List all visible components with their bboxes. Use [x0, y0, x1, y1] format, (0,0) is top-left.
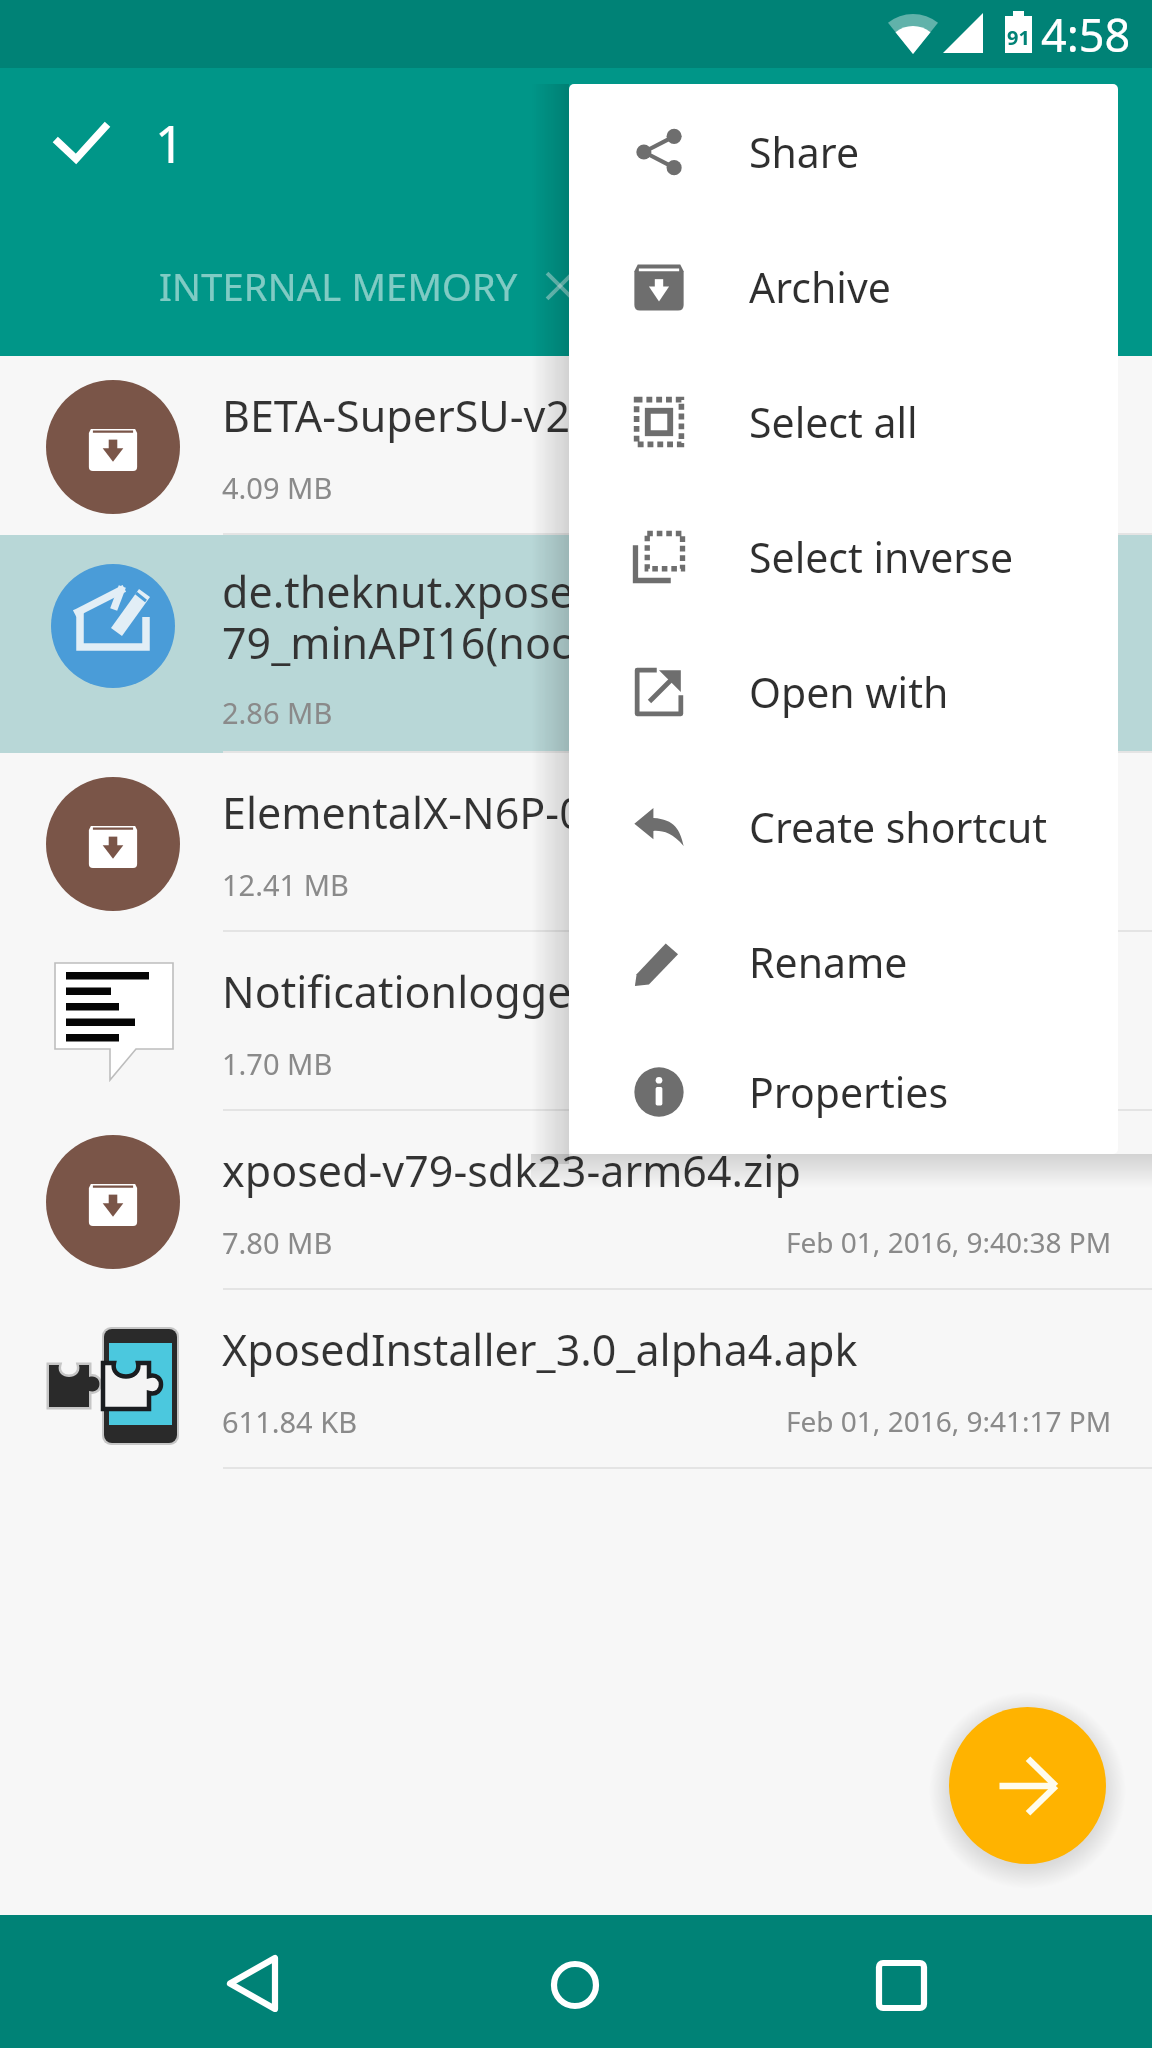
staticText: Share — [749, 124, 860, 180]
button[interactable]: Open with — [569, 624, 1118, 759]
button[interactable]: Share — [569, 84, 1118, 219]
button[interactable]: Select all — [569, 354, 1118, 489]
button[interactable]: Recents — [844, 1927, 956, 2039]
staticText: Feb 01, 2016, 9:40:38 PM — [786, 1223, 1112, 1261]
staticText: xposed-v79-sdk23-arm64.zip — [222, 1141, 801, 1200]
staticText: 91 — [1004, 24, 1033, 51]
staticText: Properties — [749, 1064, 949, 1120]
button[interactable]: XposedInstaller_3.0_alpha4.apk — [0, 1290, 1152, 1469]
button[interactable]: Next — [949, 1707, 1106, 1864]
staticText: BETA-SuperSU-v2 — [222, 386, 571, 445]
button[interactable]: BETA-SuperSU-v2 — [0, 356, 1152, 535]
staticText: Notificationlogger — [222, 962, 590, 1021]
button[interactable]: Create shortcut — [569, 759, 1118, 894]
staticText: Select all — [749, 394, 918, 450]
button[interactable]: Notificationlogger — [0, 932, 1152, 1111]
staticText: Archive — [749, 259, 891, 315]
button[interactable]: Properties — [569, 1029, 1118, 1154]
button[interactable]: Done — [26, 86, 136, 196]
staticText: XposedInstaller_3.0_alpha4.apk — [222, 1320, 858, 1379]
staticText: Rename — [749, 934, 908, 990]
button[interactable]: xposed-v79-sdk23-arm64.zip — [0, 1111, 1152, 1290]
staticText: Open with — [749, 664, 949, 720]
staticText: de.theknut.xpose 79_minAPI16(noc — [222, 562, 574, 672]
staticText: 12.41 MB — [222, 865, 349, 904]
staticText: Create shortcut — [749, 799, 1048, 855]
button[interactable]: de.theknut.xpose 79_minAPI16(noc — [0, 535, 1152, 753]
staticText: 4.09 MB — [222, 468, 333, 507]
staticText: 1 — [155, 108, 185, 177]
button[interactable]: Archive — [569, 219, 1118, 354]
staticText: Select inverse — [749, 529, 1014, 585]
staticText: ElementalX-N6P-0 — [222, 783, 584, 842]
staticText: 1.70 MB — [222, 1044, 333, 1083]
button[interactable]: ElementalX-N6P-0 — [0, 753, 1152, 932]
staticText: INTERNAL MEMORY — [159, 260, 518, 312]
button[interactable]: Select inverse — [569, 489, 1118, 624]
staticText: 4:58 — [1041, 4, 1131, 65]
staticText: 611.84 KB — [222, 1402, 358, 1441]
staticText: 2.86 MB — [222, 693, 333, 732]
button[interactable]: Home — [519, 1929, 631, 2041]
staticText: 7.80 MB — [222, 1223, 333, 1262]
staticText: Feb 01, 2016, 9:41:17 PM — [786, 1402, 1112, 1440]
button[interactable]: Back — [197, 1925, 309, 2037]
button[interactable]: Rename — [569, 894, 1118, 1029]
